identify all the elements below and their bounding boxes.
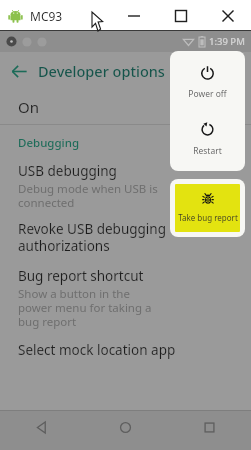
other: Power off	[200, 65, 215, 80]
button[interactable]: Take bug report	[175, 184, 240, 232]
button[interactable]: Power off	[170, 65, 245, 100]
button[interactable]: Minimize	[110, 0, 157, 31]
staticText: USB debugging	[18, 162, 117, 180]
staticText: 1:39 PM	[209, 35, 245, 48]
staticText: Bug report shortcut	[18, 267, 144, 285]
staticText: Power off	[188, 88, 227, 100]
staticText: Debug mode when USB is connected	[18, 181, 158, 210]
button[interactable]: Select mock location app	[0, 339, 251, 361]
staticText: On	[18, 97, 39, 117]
button[interactable]: Home	[83, 411, 167, 444]
button[interactable]: Recents	[167, 411, 251, 444]
button[interactable]: Maximize	[157, 0, 204, 31]
button[interactable]: Back	[0, 52, 38, 90]
other: Restart	[200, 122, 215, 137]
button[interactable]: Restart	[170, 122, 245, 157]
button[interactable]: Bug report shortcut	[0, 265, 251, 331]
button[interactable]: Close	[204, 0, 251, 31]
staticText: Restart	[193, 145, 222, 157]
staticText: Debugging	[18, 135, 80, 151]
button[interactable]: Back	[0, 411, 83, 444]
staticText: Take bug report	[178, 212, 238, 223]
staticText: Developer options	[38, 61, 165, 81]
staticText: Revoke USB debugging authorizations	[18, 220, 166, 255]
staticText: MC93	[30, 8, 63, 24]
button[interactable]: Revoke USB debugging authorizations	[0, 218, 251, 257]
staticText: Select mock location app	[18, 341, 176, 359]
staticText: Show a button in the power menu for taki…	[18, 286, 152, 329]
button[interactable]: On	[0, 90, 251, 124]
button[interactable]: USB debugging	[0, 160, 251, 212]
